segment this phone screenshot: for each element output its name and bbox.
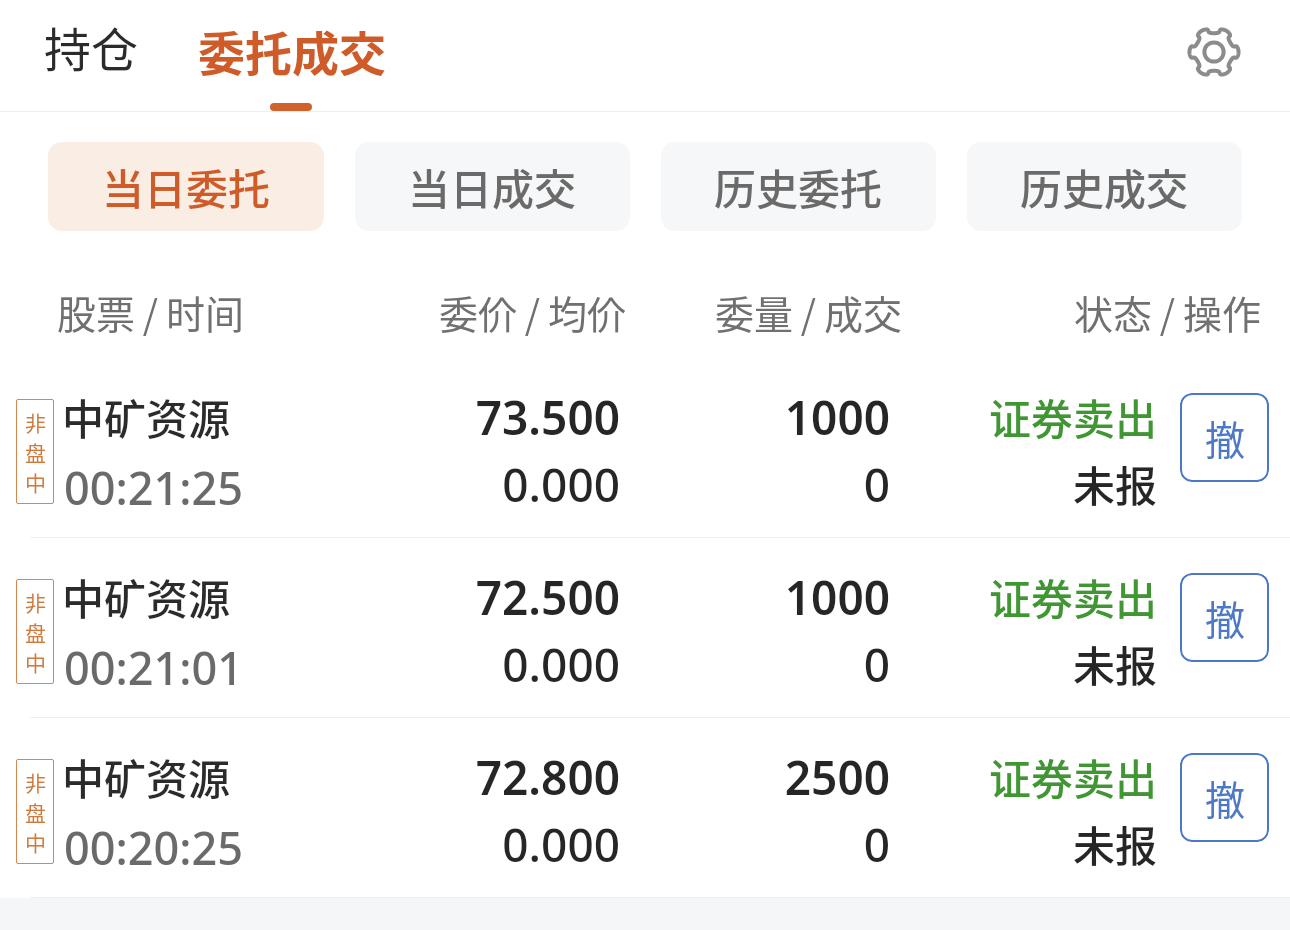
staticText: 0	[0, 633, 890, 696]
staticText: 证券卖出	[0, 746, 1157, 807]
staticText: 当日成交	[408, 156, 577, 217]
staticText: 历史委托	[714, 156, 883, 217]
staticText: 未报	[0, 633, 1157, 694]
staticText: 中矿资源	[62, 566, 231, 627]
staticText: 未报	[0, 813, 1157, 874]
staticText: 72.800	[0, 746, 620, 809]
button[interactable]: 非	[0, 717, 1290, 897]
staticText: 非	[25, 407, 46, 437]
staticText: 00:20:25	[64, 817, 243, 878]
staticText: 委价 / 均价	[439, 284, 626, 340]
button[interactable]: 历史委托	[661, 142, 936, 231]
staticText: 2500	[0, 746, 890, 809]
staticText: 证券卖出	[0, 566, 1157, 627]
staticText: 历史成交	[1020, 156, 1189, 217]
staticText: 中矿资源	[62, 386, 231, 447]
staticText: 00:21:25	[64, 457, 243, 518]
staticText: 73.500	[0, 386, 620, 449]
staticText: 中矿资源	[62, 746, 231, 807]
button[interactable]: 非	[0, 537, 1290, 717]
staticText: 盘	[25, 617, 46, 647]
staticText: 0	[0, 813, 890, 876]
button[interactable]: 撤	[1180, 393, 1269, 482]
staticText: 当日委托	[102, 156, 271, 217]
staticText: 00:21:01	[64, 637, 243, 698]
staticText: 撤	[1205, 409, 1245, 467]
button[interactable]: 撤	[1180, 573, 1269, 662]
button[interactable]: 委托成交	[182, 0, 402, 111]
staticText: 股票 / 时间	[57, 284, 244, 340]
staticText: 中	[25, 827, 46, 857]
staticText: 盘	[25, 797, 46, 827]
staticText: 72.500	[0, 566, 620, 629]
button[interactable]: 持仓	[30, 0, 152, 111]
button[interactable]: 撤	[1180, 753, 1269, 842]
staticText: 非	[25, 767, 46, 797]
staticText: 1000	[0, 386, 890, 449]
staticText: 撤	[1205, 769, 1245, 827]
staticText: 0.000	[0, 453, 620, 516]
staticText: 中	[25, 647, 46, 677]
button[interactable]: Settings	[1187, 25, 1241, 79]
staticText: 0.000	[0, 633, 620, 696]
staticText: 1000	[0, 566, 890, 629]
staticText: 撤	[1205, 589, 1245, 647]
staticText: 证券卖出	[0, 386, 1157, 447]
staticText: 未报	[0, 453, 1157, 514]
staticText: 非	[25, 587, 46, 617]
staticText: 状态 / 操作	[1074, 284, 1261, 340]
button[interactable]: 当日委托	[48, 142, 324, 231]
staticText: 持仓	[44, 12, 138, 80]
button[interactable]: 历史成交	[967, 142, 1242, 231]
staticText: 盘	[25, 437, 46, 467]
staticText: 0	[0, 453, 890, 516]
button[interactable]: 当日成交	[355, 142, 630, 231]
staticText: 0.000	[0, 813, 620, 876]
button[interactable]: 非	[0, 357, 1290, 537]
staticText: 中	[25, 467, 46, 497]
staticText: 委托成交	[198, 16, 386, 84]
staticText: 委量 / 成交	[715, 284, 902, 340]
